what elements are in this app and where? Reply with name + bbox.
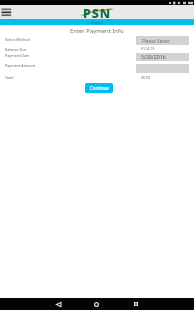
staticText: Balance Due: [5, 47, 27, 52]
staticText: Select Method: [5, 37, 30, 42]
button[interactable]: Home: [86, 298, 106, 310]
button[interactable]: 5/20/2016: [136, 53, 189, 61]
staticText: Enter Payment Info: [70, 27, 124, 35]
staticText: Payment Date: [5, 53, 30, 58]
button[interactable]: Back: [48, 298, 68, 310]
staticText: $0.00: [141, 75, 151, 80]
button[interactable]: Please Select: [136, 36, 189, 45]
staticText: Continue: [90, 85, 109, 91]
staticText: Please Select: [142, 38, 170, 44]
staticText: Total: [5, 75, 14, 80]
button[interactable]: Recent apps: [126, 298, 146, 310]
staticText: $114.19: [141, 46, 155, 51]
staticText: Payment Amount: [5, 63, 36, 68]
button[interactable]: Continue: [85, 83, 113, 93]
button[interactable]: Open navigation menu: [0, 5, 14, 19]
staticText: 5/20/2016: [141, 53, 166, 60]
staticText: PSN: [83, 5, 111, 19]
staticText: Step 5: [91, 20, 104, 25]
